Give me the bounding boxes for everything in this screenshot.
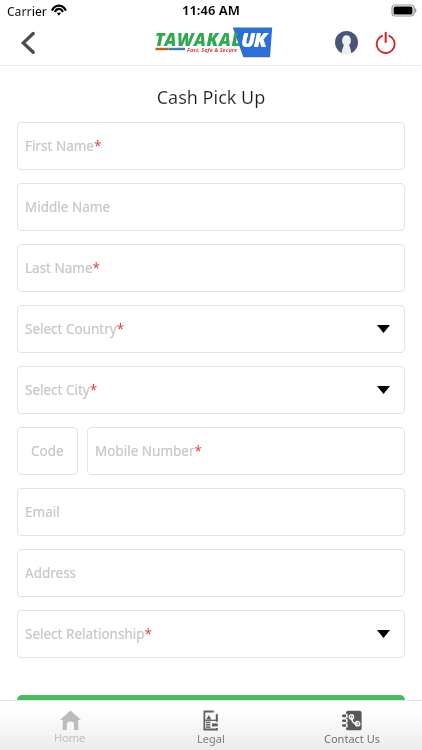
staticText: Select Relationship* (25, 625, 152, 643)
staticText: Carrier (7, 3, 47, 19)
button[interactable]: Select Country* (17, 305, 405, 353)
staticText: TAWAKAL (155, 27, 242, 51)
button[interactable]: Home (0, 701, 140, 750)
button[interactable]: Mobile Number* (87, 427, 405, 475)
button[interactable]: Address (17, 549, 405, 597)
staticText: Fast, Safe & Secure (187, 46, 238, 54)
button[interactable]: First Name* (17, 122, 405, 170)
staticText: Legal (197, 731, 225, 746)
button[interactable]: Email (17, 488, 405, 536)
staticText: Code (31, 442, 64, 460)
button[interactable]: Logout (370, 28, 401, 59)
button[interactable]: Select Relationship* (17, 610, 405, 658)
staticText: Cash Pick Up (0, 85, 422, 110)
button[interactable]: Contact Us (281, 701, 422, 750)
staticText: Select City* (25, 381, 98, 399)
staticText: UK (241, 26, 266, 53)
button[interactable]: Code (17, 427, 78, 475)
staticText: Last Name* (25, 259, 101, 277)
staticText: Select Country* (25, 320, 125, 338)
button[interactable] (17, 695, 405, 742)
staticText: Contact Us (324, 731, 380, 746)
staticText: Address (25, 564, 77, 582)
button[interactable]: Middle Name (17, 183, 405, 231)
staticText: Email (25, 503, 60, 521)
button[interactable]: Profile (331, 27, 362, 58)
staticText: Middle Name (25, 198, 111, 216)
staticText: First Name* (25, 137, 102, 155)
button[interactable]: Legal (140, 701, 281, 750)
button[interactable]: Last Name* (17, 244, 405, 292)
button[interactable]: Back (7, 25, 49, 61)
staticText: 11:46 AM (182, 1, 241, 19)
staticText: Mobile Number* (95, 442, 202, 460)
staticText: Home (54, 730, 86, 745)
button[interactable]: Select City* (17, 366, 405, 414)
